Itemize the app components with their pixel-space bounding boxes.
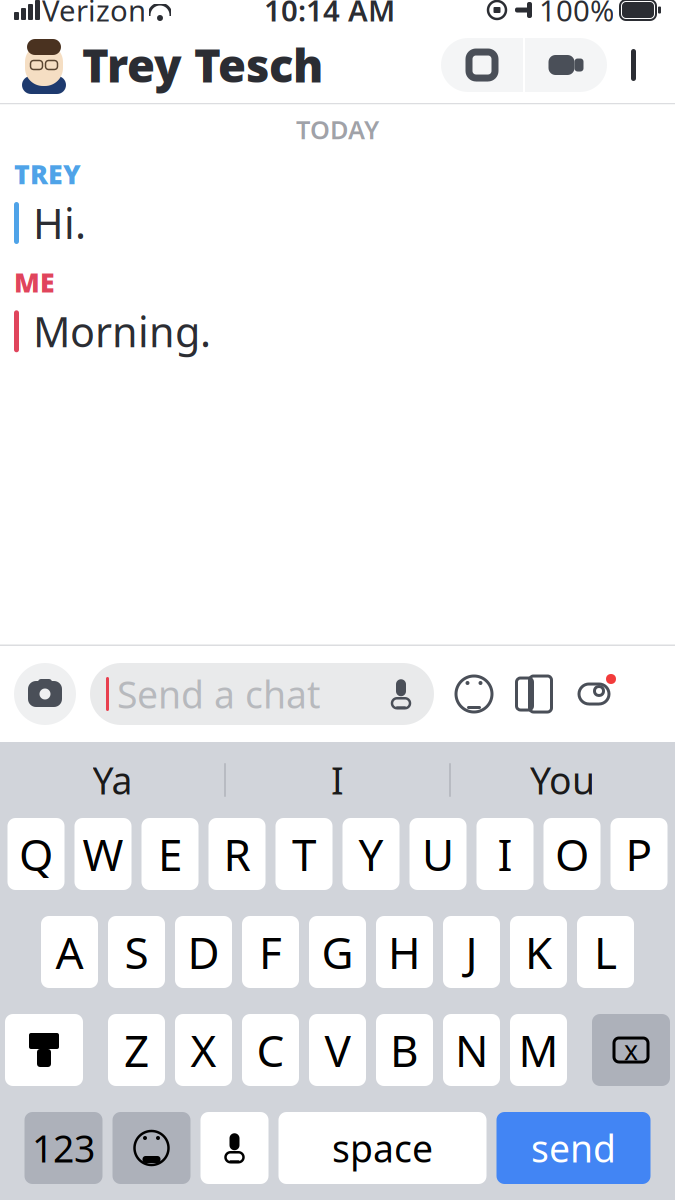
staticText: Send a chat	[117, 669, 320, 719]
button[interactable]: Rocket	[566, 663, 622, 725]
button[interactable]: D	[175, 916, 232, 988]
staticText: N	[455, 1021, 488, 1079]
button[interactable]: Video call	[525, 38, 607, 92]
button[interactable]: Send a chat	[90, 663, 434, 725]
button[interactable]: space	[278, 1112, 486, 1184]
staticText: 100%	[539, 0, 614, 29]
button[interactable]: U	[409, 818, 466, 890]
button[interactable]: Trey Tesch	[0, 35, 323, 95]
staticText: x	[624, 1032, 638, 1068]
staticText: Hi.	[33, 196, 86, 250]
button[interactable]: T	[275, 818, 332, 890]
staticText: E	[158, 825, 182, 883]
button[interactable]: S	[108, 916, 165, 988]
staticText: Morning.	[33, 304, 211, 359]
button[interactable]: 123	[24, 1112, 102, 1184]
button[interactable]: Camera	[14, 663, 76, 725]
button[interactable]: V	[309, 1014, 366, 1086]
button[interactable]: F	[242, 916, 299, 988]
staticText: R	[223, 825, 250, 883]
button[interactable]: J	[443, 916, 500, 988]
staticText: V	[324, 1021, 350, 1079]
staticText: G	[321, 923, 353, 981]
button[interactable]: Dictate	[200, 1112, 268, 1184]
button[interactable]: Shift	[5, 1014, 83, 1086]
staticText: A	[55, 923, 83, 981]
button[interactable]: More options	[607, 38, 667, 92]
button[interactable]: N	[443, 1014, 500, 1086]
staticText: I	[331, 755, 344, 805]
staticText: 123	[32, 1123, 95, 1173]
button[interactable]: O	[543, 818, 600, 890]
button[interactable]: H	[376, 916, 433, 988]
button[interactable]: Z	[108, 1014, 165, 1086]
staticText: U	[422, 825, 454, 883]
button[interactable]: Delete	[592, 1014, 670, 1086]
button[interactable]: E	[141, 818, 198, 890]
staticText: ME	[14, 264, 55, 300]
staticText: TODAY	[296, 112, 379, 146]
button[interactable]: A	[41, 916, 98, 988]
button[interactable]: G	[309, 916, 366, 988]
button[interactable]: I	[226, 742, 449, 818]
staticText: TREY	[14, 156, 81, 191]
button[interactable]: send	[496, 1112, 650, 1184]
staticText: Ya	[92, 755, 132, 805]
staticText: J	[465, 923, 477, 981]
staticText: W	[82, 825, 123, 883]
button[interactable]: B	[376, 1014, 433, 1086]
staticText: C	[256, 1021, 284, 1079]
staticText: S	[124, 923, 148, 981]
button[interactable]: Y	[342, 818, 399, 890]
staticText: Q	[19, 825, 53, 883]
staticText: Z	[124, 1021, 149, 1079]
staticText: I	[497, 825, 512, 883]
staticText: K	[525, 923, 552, 981]
button[interactable]: P	[610, 818, 667, 890]
button[interactable]: C	[242, 1014, 299, 1086]
staticText: P	[625, 825, 652, 883]
button[interactable]: Voice call	[441, 38, 523, 92]
button[interactable]: Ya	[1, 742, 224, 818]
button[interactable]: M	[510, 1014, 567, 1086]
staticText: 10:14 AM	[264, 0, 395, 29]
button[interactable]: You	[451, 742, 674, 818]
staticText: M	[518, 1021, 558, 1079]
staticText: F	[259, 923, 282, 981]
staticText: H	[388, 923, 421, 981]
staticText: O	[555, 825, 589, 883]
staticText: T	[292, 825, 316, 883]
button[interactable]: Emoji	[112, 1112, 190, 1184]
button[interactable]: X	[175, 1014, 232, 1086]
staticText: X	[190, 1021, 216, 1079]
staticText: You	[530, 755, 595, 805]
button[interactable]: Cameos	[506, 663, 562, 725]
staticText: space	[332, 1123, 433, 1173]
button[interactable]: L	[577, 916, 634, 988]
button[interactable]: Q	[7, 818, 64, 890]
button[interactable]: Stickers	[446, 663, 502, 725]
staticText: Trey Tesch	[82, 35, 323, 95]
staticText: Verizon	[42, 0, 146, 29]
staticText: L	[594, 923, 617, 981]
staticText: B	[390, 1021, 419, 1079]
staticText: D	[187, 923, 219, 981]
button[interactable]: I	[476, 818, 533, 890]
button[interactable]: K	[510, 916, 567, 988]
staticText: send	[531, 1123, 616, 1173]
button[interactable]: R	[208, 818, 265, 890]
staticText: Y	[358, 825, 383, 883]
button[interactable]: W	[74, 818, 131, 890]
